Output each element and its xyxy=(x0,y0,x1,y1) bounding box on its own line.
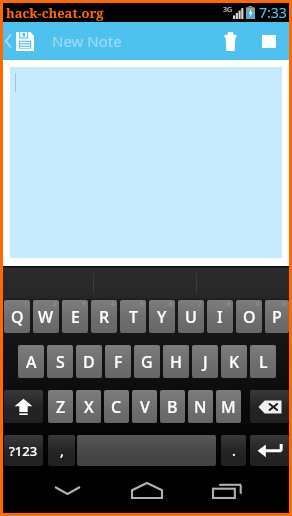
staticText: F xyxy=(114,351,123,373)
staticText: 3G xyxy=(223,5,233,15)
button[interactable]: G xyxy=(134,345,160,378)
staticText: V xyxy=(140,396,150,418)
button[interactable]: ?123 xyxy=(4,435,43,466)
button[interactable]: M xyxy=(216,390,241,423)
button[interactable]: Home xyxy=(113,466,181,513)
button[interactable]: H xyxy=(163,345,189,378)
staticText: Z xyxy=(56,396,66,418)
staticText: 8 xyxy=(227,300,231,308)
button[interactable]: Z xyxy=(48,390,73,423)
button[interactable]: Y xyxy=(149,300,175,333)
staticText: 5 xyxy=(140,300,144,308)
staticText: hack-cheat.org xyxy=(6,4,104,22)
staticText: S xyxy=(56,351,65,373)
button[interactable]: Back xyxy=(33,466,101,513)
button[interactable]: D xyxy=(76,345,102,378)
button[interactable]: Shift xyxy=(4,390,43,423)
button[interactable]: T xyxy=(120,300,146,333)
button[interactable]: J xyxy=(192,345,218,378)
button[interactable]: New note xyxy=(248,22,289,60)
staticText: U xyxy=(185,306,197,328)
staticText: C xyxy=(111,396,122,418)
button[interactable]: , xyxy=(48,435,75,466)
staticText: . xyxy=(232,441,236,460)
staticText: 7:33 xyxy=(259,3,287,22)
staticText: L xyxy=(259,351,268,373)
staticText: 7 xyxy=(198,300,202,308)
staticText: , xyxy=(60,441,64,460)
button[interactable]: E xyxy=(62,300,88,333)
staticText: O xyxy=(243,306,256,328)
staticText: G xyxy=(141,351,153,373)
button[interactable]: X xyxy=(76,390,101,423)
staticText: X xyxy=(84,396,94,418)
staticText: 4 xyxy=(111,300,115,308)
button[interactable]: U xyxy=(178,300,204,333)
button[interactable]: . xyxy=(221,435,246,466)
button[interactable]: Delete xyxy=(212,22,248,60)
button[interactable]: L xyxy=(250,345,276,378)
staticText: R xyxy=(99,306,110,328)
staticText: D xyxy=(83,351,95,373)
staticText: I xyxy=(217,306,223,328)
staticText: W xyxy=(38,306,54,328)
button[interactable]: K xyxy=(221,345,247,378)
button[interactable]: W xyxy=(33,300,59,333)
button[interactable]: A xyxy=(18,345,44,378)
staticText: 0 xyxy=(283,300,287,308)
staticText: H xyxy=(170,351,182,373)
staticText: E xyxy=(71,306,80,328)
button[interactable]: Space xyxy=(77,435,216,466)
button[interactable]: V xyxy=(132,390,157,423)
staticText: B xyxy=(167,396,178,418)
staticText: N xyxy=(194,396,207,418)
staticText: 3 xyxy=(82,300,86,308)
staticText: P xyxy=(272,306,282,328)
staticText: A xyxy=(26,351,37,373)
button[interactable]: C xyxy=(104,390,129,423)
staticText: 2 xyxy=(53,300,57,308)
button[interactable]: P xyxy=(265,300,289,333)
button[interactable]: Enter xyxy=(250,435,289,466)
staticText: M xyxy=(221,396,236,418)
button[interactable] xyxy=(194,266,289,300)
button[interactable] xyxy=(3,266,99,300)
staticText: 1 xyxy=(24,300,28,308)
button[interactable]: Q xyxy=(4,300,30,333)
staticText: Q xyxy=(11,306,24,328)
button[interactable]: R xyxy=(91,300,117,333)
staticText: Y xyxy=(157,306,167,328)
staticText: 6 xyxy=(169,300,173,308)
button[interactable]: Save note xyxy=(3,22,34,60)
button[interactable]: S xyxy=(47,345,73,378)
button[interactable]: B xyxy=(160,390,185,423)
staticText: K xyxy=(229,351,240,373)
button[interactable]: N xyxy=(188,390,213,423)
staticText: New Note xyxy=(52,31,122,51)
staticText: T xyxy=(129,306,138,328)
button[interactable] xyxy=(99,266,194,300)
staticText: ?123 xyxy=(9,442,38,460)
button[interactable]: F xyxy=(105,345,131,378)
staticText: 9 xyxy=(256,300,260,308)
button[interactable]: Backspace xyxy=(250,390,289,423)
button[interactable]: Recent apps xyxy=(193,466,261,513)
staticText: J xyxy=(203,351,208,373)
button[interactable]: I xyxy=(207,300,233,333)
button[interactable]: O xyxy=(236,300,262,333)
